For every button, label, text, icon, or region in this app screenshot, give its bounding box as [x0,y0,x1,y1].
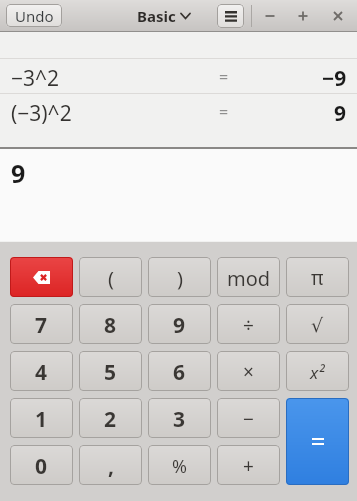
staticText: ) [177,265,183,292]
staticText: 8 [104,311,117,340]
button[interactable] [286,398,349,485]
button[interactable]: 6 [148,351,211,391]
button[interactable]: − [217,398,280,438]
button[interactable] [10,257,73,297]
button[interactable]: 7 [10,304,73,344]
button[interactable]: 5 [79,351,142,391]
button[interactable]: 4 [10,351,73,391]
button[interactable]: (−3)^2 [0,94,357,128]
staticText: mod [227,265,271,292]
button[interactable]: 2 [79,398,142,438]
staticText: 4 [35,358,48,387]
staticText: Basic [137,6,176,26]
staticText: % [172,454,187,479]
staticText: 9 [173,311,186,340]
button[interactable]: π [286,257,349,297]
staticText: 2 [104,405,117,434]
staticText: 9 [334,99,347,128]
staticText: −9 [322,64,347,93]
staticText: × [243,359,254,385]
button[interactable] [217,4,244,28]
staticText: 0 [35,452,48,481]
button[interactable] [291,4,315,28]
button[interactable]: 8 [79,304,142,344]
staticText: √ [311,314,324,336]
staticText: (−3)^2 [11,99,72,128]
staticText: −3^2 [11,64,60,93]
button[interactable]: 9 [148,304,211,344]
staticText: Undo [15,6,54,26]
button[interactable] [258,4,282,28]
staticText: 3 [173,405,186,434]
button[interactable]: 1 [10,398,73,438]
staticText: x² [310,361,325,384]
button[interactable]: 3 [148,398,211,438]
button[interactable]: ) [148,257,211,297]
staticText: 6 [173,358,186,387]
staticText: , [108,452,114,481]
button[interactable]: 0 [10,445,73,485]
button[interactable]: ÷ [217,304,280,344]
button[interactable]: 9 [0,149,357,241]
staticText: 1 [35,405,48,434]
button[interactable]: √ [286,304,349,344]
staticText: 9 [11,156,26,190]
staticText: ÷ [243,312,254,338]
staticText: π [311,265,324,291]
button[interactable]: , [79,445,142,485]
button[interactable]: Basic [137,6,190,26]
button[interactable]: −3^2 [0,59,357,93]
button[interactable]: + [217,445,280,485]
button[interactable]: % [148,445,211,485]
staticText: − [243,406,254,432]
staticText: 7 [35,311,48,340]
button[interactable]: x² [286,351,349,391]
staticText: 5 [104,358,117,387]
staticText: = [219,66,229,88]
button[interactable]: mod [217,257,280,297]
button[interactable]: Undo [6,4,62,27]
staticText: + [243,453,254,479]
button[interactable]: ( [79,257,142,297]
staticText: = [219,101,229,123]
staticText: ( [108,265,114,292]
button[interactable]: × [217,351,280,391]
button[interactable] [326,4,350,28]
